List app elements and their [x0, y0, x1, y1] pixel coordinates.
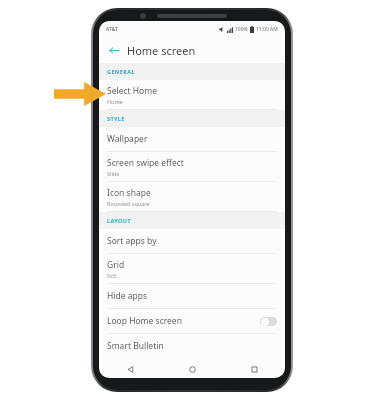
staticText: Select Home [107, 85, 157, 97]
staticText: 5x5 [107, 272, 117, 279]
staticText: Loop Home screen [107, 315, 182, 327]
staticText: 100% [235, 26, 248, 33]
button[interactable]: Wallpaper [99, 127, 285, 152]
staticText: Rounded square [107, 200, 150, 207]
staticText: Screen swipe effect [107, 157, 184, 169]
staticText: GENERAL [107, 68, 135, 75]
staticText: Wallpaper [107, 133, 148, 145]
staticText: Grid [107, 259, 125, 271]
button[interactable]: Loop Home screen [99, 309, 285, 334]
button[interactable]: Back [106, 42, 122, 58]
button[interactable]: Grid [99, 254, 285, 284]
button[interactable]: Home [161, 360, 223, 378]
button[interactable]: Icon shape [99, 182, 285, 212]
staticText: Slide [107, 170, 120, 177]
staticText: AT&T [106, 26, 118, 33]
staticText: LAYOUT [107, 217, 131, 224]
staticText: Sort apps by [107, 235, 157, 247]
button[interactable]: Smart Bulletin [99, 334, 285, 358]
staticText: Home [107, 98, 123, 105]
button[interactable]: Hide apps [99, 284, 285, 309]
button[interactable]: Sort apps by [99, 229, 285, 254]
button[interactable]: Screen swipe effect [99, 152, 285, 182]
staticText: Home screen [127, 43, 196, 58]
button[interactable]: Select Home [99, 80, 285, 110]
button[interactable]: Recents [223, 360, 285, 378]
staticText: Hide apps [107, 290, 148, 302]
staticText: STYLE [107, 115, 125, 122]
staticText: 11:00 AM [256, 26, 278, 33]
button[interactable]: Back [99, 360, 161, 378]
staticText: Smart Bulletin [107, 340, 164, 352]
staticText: Icon shape [107, 187, 151, 199]
